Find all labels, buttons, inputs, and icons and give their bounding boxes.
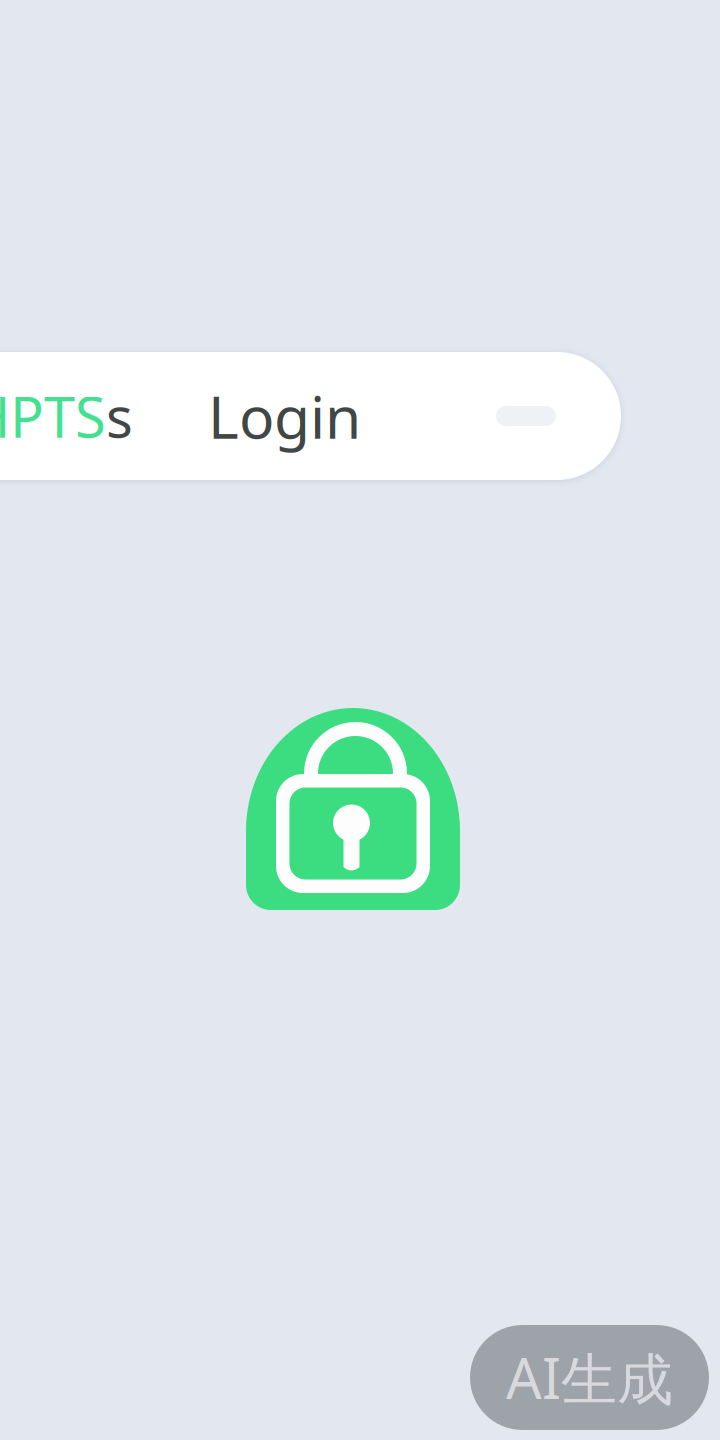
staticText: AI生成 bbox=[506, 1340, 673, 1415]
staticText: CHPTS bbox=[0, 379, 106, 453]
button[interactable]: More bbox=[478, 368, 574, 464]
button[interactable]: CHPTSs home bbox=[0, 352, 133, 480]
staticText: Login bbox=[208, 377, 361, 455]
staticText: s bbox=[106, 379, 133, 453]
